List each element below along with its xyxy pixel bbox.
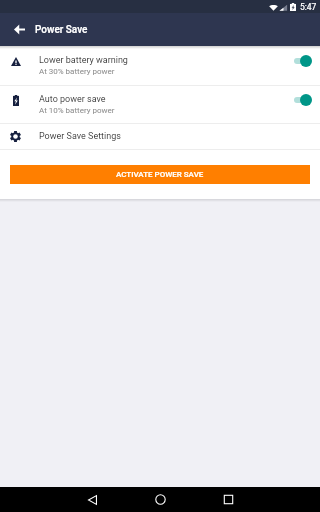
button[interactable]: Navigate up: [0, 13, 34, 46]
button[interactable]: Power Save Settings: [0, 124, 320, 149]
staticText: 5:47: [300, 2, 317, 12]
button[interactable]: ACTIVATE POWER SAVE: [10, 165, 310, 184]
staticText: Power Save Settings: [39, 131, 121, 142]
staticText: ACTIVATE POWER SAVE: [116, 170, 204, 179]
button[interactable]: Auto power save: [0, 86, 320, 123]
button[interactable]: Recent apps: [214, 487, 242, 512]
staticText: Auto power save: [39, 94, 106, 105]
staticText: Lower battery warning: [39, 55, 128, 66]
staticText: Power Save: [35, 24, 88, 36]
button[interactable]: Back: [78, 487, 106, 512]
staticText: At 30% battery power: [39, 67, 115, 76]
button[interactable]: Lower battery warning: [0, 46, 320, 85]
button[interactable]: Home: [146, 487, 174, 512]
staticText: At 10% battery power: [39, 106, 115, 115]
